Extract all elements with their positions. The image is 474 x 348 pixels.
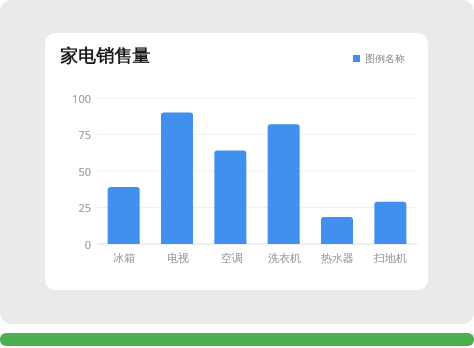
staticText: 50 <box>49 164 91 179</box>
button[interactable]: 热水器 <box>311 248 364 268</box>
button[interactable]: 洗衣机 <box>258 248 311 268</box>
button[interactable]: 扫地机 <box>364 248 417 268</box>
staticText: 电视 <box>167 251 189 265</box>
staticText: 0 <box>49 237 91 252</box>
staticText: 75 <box>49 127 91 142</box>
staticText: 图例名称 <box>365 52 405 65</box>
button[interactable]: 家电销售量 <box>45 33 428 290</box>
staticText: 热水器 <box>321 251 354 265</box>
button[interactable]: 空调 <box>205 248 258 268</box>
button[interactable]: 冰箱 <box>97 248 151 268</box>
staticText: 家电销售量 <box>60 45 150 68</box>
staticText: 25 <box>49 200 91 215</box>
staticText: 洗衣机 <box>268 251 301 265</box>
button[interactable]: 电视 <box>151 248 205 268</box>
button[interactable]: 图例名称 <box>353 52 405 65</box>
staticText: 冰箱 <box>113 251 135 265</box>
staticText: 空调 <box>221 251 243 265</box>
staticText: 100 <box>49 91 91 106</box>
button[interactable]: Accent bar <box>0 333 474 346</box>
staticText: 扫地机 <box>374 251 407 265</box>
